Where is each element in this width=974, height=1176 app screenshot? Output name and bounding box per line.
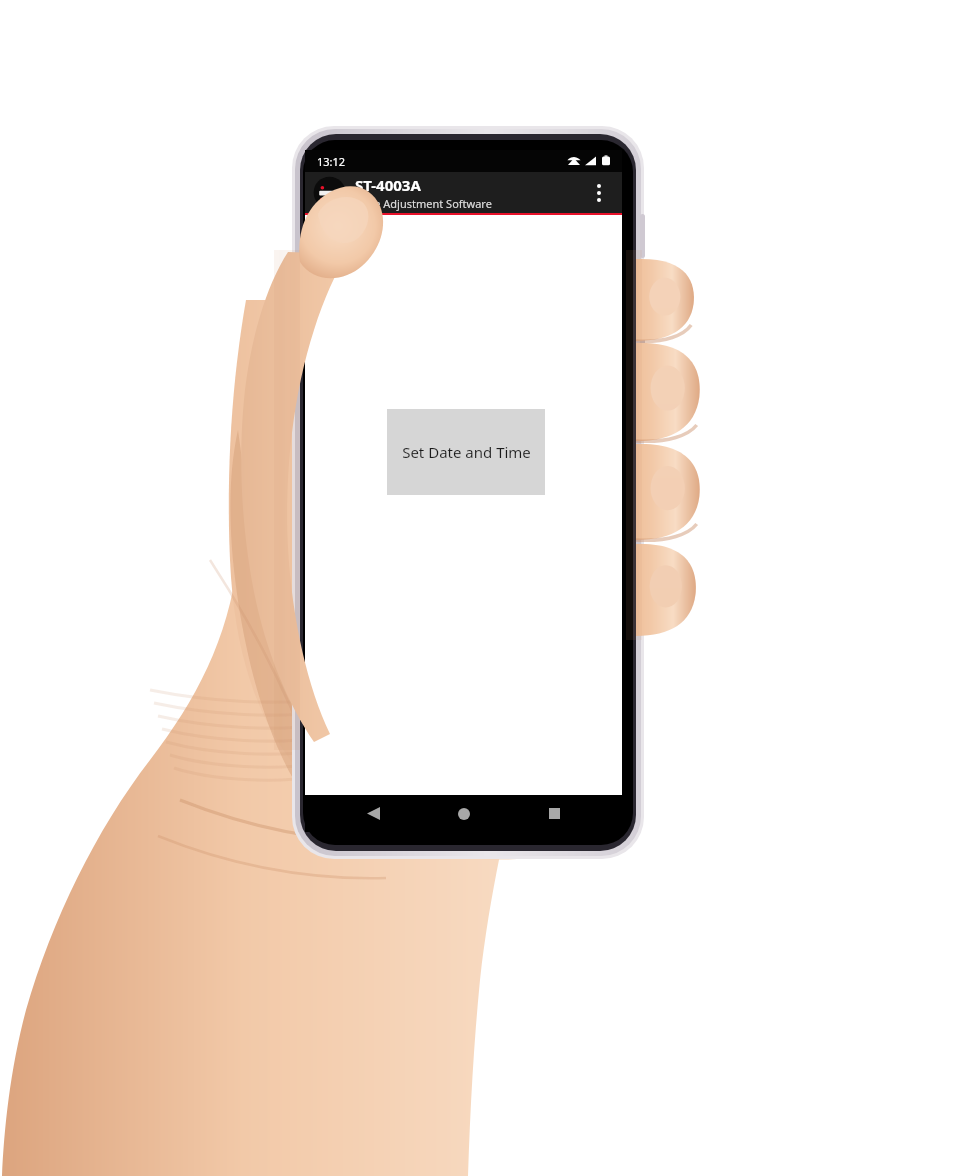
button[interactable]: Set Date and Time [387,409,545,495]
staticText: Time Adjustment Software [355,196,492,211]
button[interactable]: Home [441,795,487,832]
staticText: ST-4003A [355,175,421,195]
button[interactable]: More options [580,174,618,212]
staticText: Set Date and Time [402,442,531,462]
staticText: 13:12 [317,154,346,169]
button[interactable]: Recents [531,795,577,832]
button[interactable]: Back [350,795,396,832]
